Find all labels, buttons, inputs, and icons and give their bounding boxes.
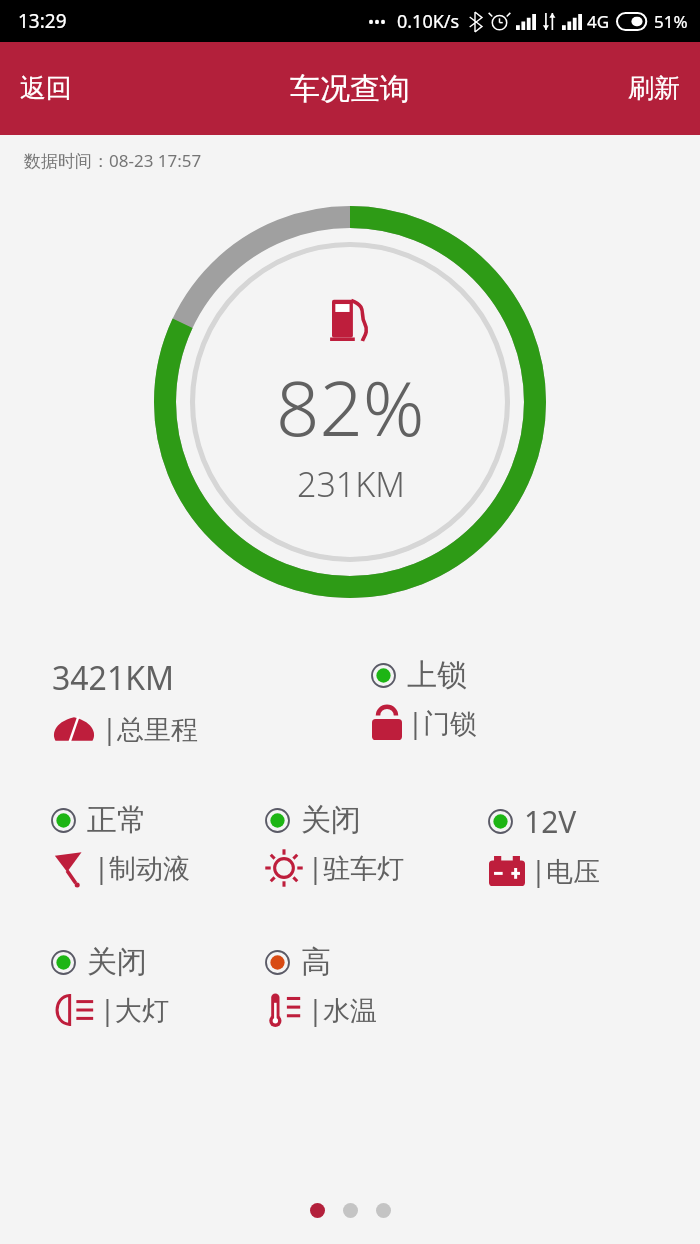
button[interactable]: 返回	[0, 54, 92, 123]
staticText: •••	[368, 11, 387, 33]
button[interactable]: 关闭	[0, 941, 175, 1030]
staticText: |驻车灯	[308, 849, 404, 886]
button[interactable]: 正常	[0, 799, 196, 888]
button[interactable]: 高	[234, 941, 383, 1030]
staticText: 82%	[276, 355, 425, 459]
staticText: 12V	[524, 801, 577, 842]
button[interactable]: 12V	[467, 799, 606, 891]
staticText: 车况查询	[290, 70, 410, 108]
staticText: 3421KM	[52, 656, 175, 700]
staticText: |门锁	[408, 704, 477, 741]
staticText: 正常	[87, 801, 147, 839]
staticText: 数据时间：08-23 17:57	[24, 149, 202, 172]
staticText: |制动液	[94, 849, 190, 886]
button[interactable]: 关闭	[234, 799, 410, 888]
staticText: |水温	[308, 991, 377, 1028]
button[interactable]: 刷新	[608, 54, 700, 123]
staticText: 231KM	[297, 461, 405, 507]
staticText: 13:29	[18, 8, 67, 34]
staticText: |电压	[531, 852, 600, 889]
staticText: 高	[301, 943, 331, 981]
staticText: |大灯	[100, 991, 169, 1028]
staticText: 关闭	[301, 801, 361, 839]
button[interactable]: 3421KM	[0, 654, 204, 749]
button[interactable]: 上锁	[350, 654, 483, 743]
staticText: 0.10K/s	[397, 9, 460, 34]
staticText: 4G	[587, 10, 610, 33]
staticText: 返回	[20, 72, 72, 105]
staticText: 关闭	[87, 943, 147, 981]
staticText: 上锁	[407, 656, 467, 694]
staticText: 51%	[654, 10, 688, 33]
staticText: 刷新	[628, 72, 680, 105]
staticText: |总里程	[102, 710, 198, 747]
